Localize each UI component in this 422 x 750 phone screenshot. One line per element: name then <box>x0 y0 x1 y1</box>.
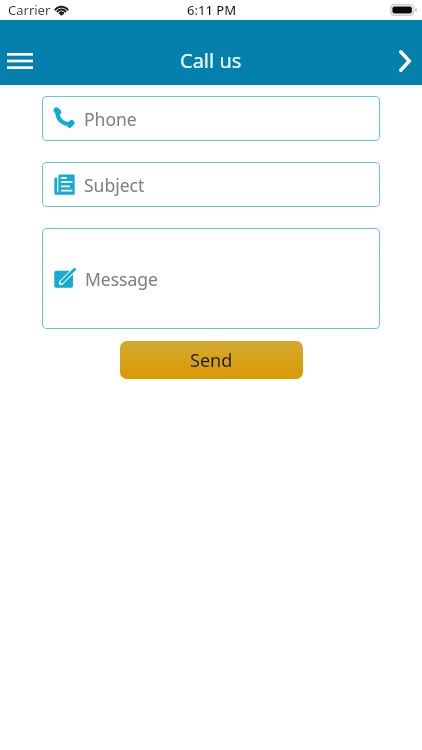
button[interactable]: Subject <box>42 162 380 207</box>
staticText: Send <box>190 348 233 373</box>
button[interactable]: Message <box>42 228 380 329</box>
staticText: Call us <box>180 47 242 74</box>
staticText: Message <box>85 267 158 291</box>
button[interactable]: Phone <box>42 96 380 141</box>
staticText: 6:11 PM <box>187 1 237 19</box>
button[interactable]: Next <box>382 41 422 81</box>
staticText: Subject <box>84 173 145 197</box>
button[interactable]: Menu <box>0 41 40 81</box>
staticText: Phone <box>84 107 137 131</box>
staticText: Carrier <box>8 1 51 19</box>
button[interactable]: Send <box>120 341 303 379</box>
